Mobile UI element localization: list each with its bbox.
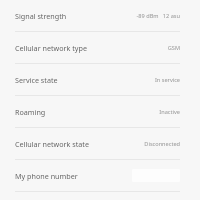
button[interactable]: Roaming: [0, 96, 200, 127]
staticText: Signal strength: [15, 11, 67, 21]
staticText: Inactive: [159, 108, 180, 116]
staticText: In service: [154, 76, 180, 84]
button[interactable]: Signal strength: [0, 0, 200, 31]
button[interactable]: Service state: [0, 64, 200, 95]
staticText: GSM: [167, 44, 180, 52]
staticText: Roaming: [15, 107, 46, 117]
staticText: Service state: [15, 75, 58, 85]
staticText: Disconnected: [144, 140, 180, 148]
staticText: Cellular network state: [15, 139, 89, 149]
button[interactable]: My phone number: [0, 160, 200, 191]
staticText: Cellular network type: [15, 43, 87, 53]
button[interactable]: Cellular network state: [0, 128, 200, 159]
staticText: -89 dBm 12 asu: [136, 12, 180, 20]
staticText: My phone number: [15, 171, 78, 181]
button[interactable]: Cellular network type: [0, 32, 200, 63]
